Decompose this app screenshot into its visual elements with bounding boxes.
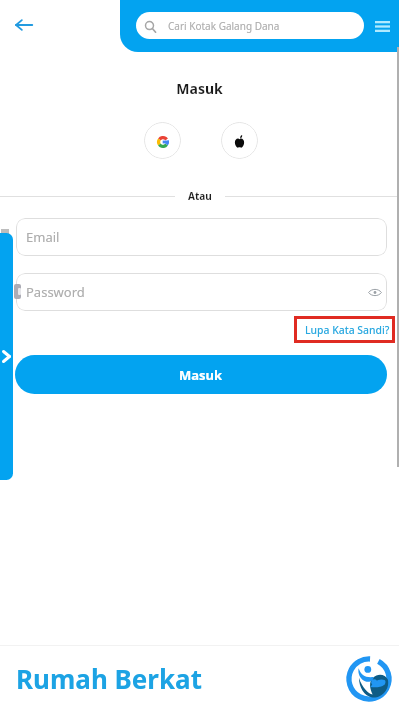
button[interactable]: Email bbox=[16, 218, 387, 256]
staticText: Password bbox=[26, 283, 85, 301]
staticText: Rumah Berkat bbox=[16, 661, 202, 696]
staticText: Email bbox=[26, 228, 60, 246]
staticText: Masuk bbox=[179, 366, 223, 384]
button[interactable]: Menu bbox=[369, 13, 395, 39]
button[interactable]: Cari Kotak Galang Dana bbox=[136, 12, 364, 39]
button[interactable]: Show password bbox=[366, 283, 384, 301]
staticText: Cari Kotak Galang Dana bbox=[168, 19, 280, 33]
button[interactable]: Open side panel bbox=[0, 233, 13, 480]
staticText: Masuk bbox=[0, 79, 399, 98]
staticText: Atau bbox=[188, 189, 212, 203]
button[interactable]: Sign in with Google bbox=[144, 122, 181, 159]
button[interactable]: Sign in with Apple bbox=[221, 122, 258, 159]
button[interactable]: Back bbox=[9, 10, 39, 40]
button[interactable]: Masuk bbox=[15, 355, 387, 394]
button[interactable]: Lupa Kata Sandi? bbox=[294, 316, 395, 343]
staticText: Lupa Kata Sandi? bbox=[305, 323, 390, 337]
button[interactable]: Password bbox=[16, 273, 387, 311]
